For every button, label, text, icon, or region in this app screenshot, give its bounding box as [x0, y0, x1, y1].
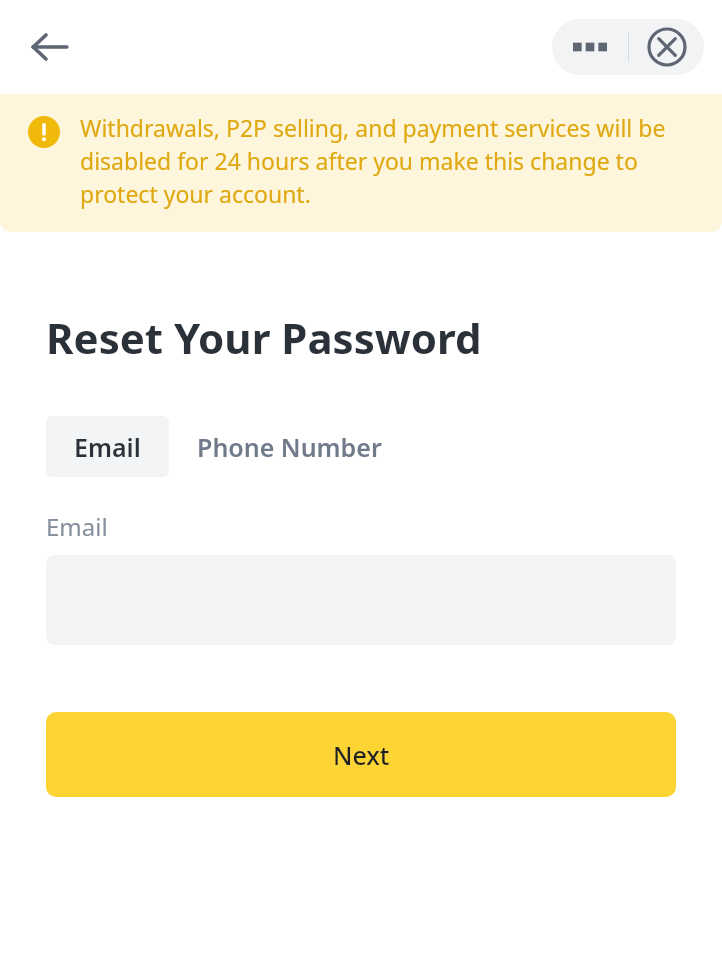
staticText: Reset Your Password: [46, 309, 482, 366]
staticText: Email: [46, 510, 108, 543]
button[interactable]: Close: [629, 19, 704, 75]
button[interactable]: Next: [46, 712, 676, 797]
staticText: Next: [333, 738, 390, 772]
staticText: Withdrawals, P2P selling, and payment se…: [80, 112, 694, 210]
button[interactable]: More options: [552, 19, 628, 75]
button[interactable]: Email: [46, 416, 169, 477]
button[interactable]: Back: [18, 15, 82, 79]
staticText: Email: [74, 430, 141, 464]
staticText: Phone Number: [197, 430, 382, 464]
button[interactable]: Phone Number: [169, 416, 410, 477]
